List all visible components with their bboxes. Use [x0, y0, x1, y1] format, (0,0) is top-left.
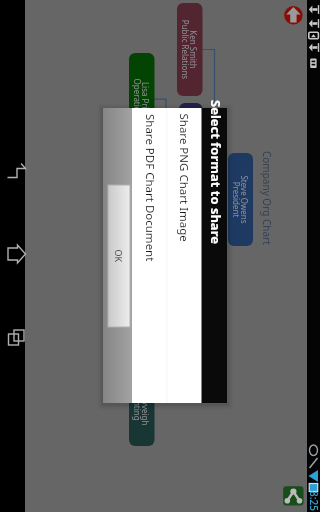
button[interactable]: App icon: [283, 486, 304, 506]
button[interactable]: Back: [6, 158, 26, 186]
button[interactable]: Scroll to top: [284, 6, 303, 25]
button[interactable]: OK: [108, 185, 130, 327]
button[interactable]: Kyle Cavveigh, Accounting: [129, 353, 155, 446]
button[interactable]: Steve Owens, President: [228, 153, 253, 246]
button[interactable]: Share PNG Chart Image: [167, 108, 202, 403]
button[interactable]: Ken Smith, Public Relations: [177, 3, 203, 96]
button[interactable]: Recent apps: [6, 324, 26, 352]
button[interactable]: Home: [6, 240, 26, 268]
button[interactable]: Lisa Price, Operations: [129, 53, 155, 146]
button[interactable]: Share PDF Chart Document: [132, 108, 167, 403]
